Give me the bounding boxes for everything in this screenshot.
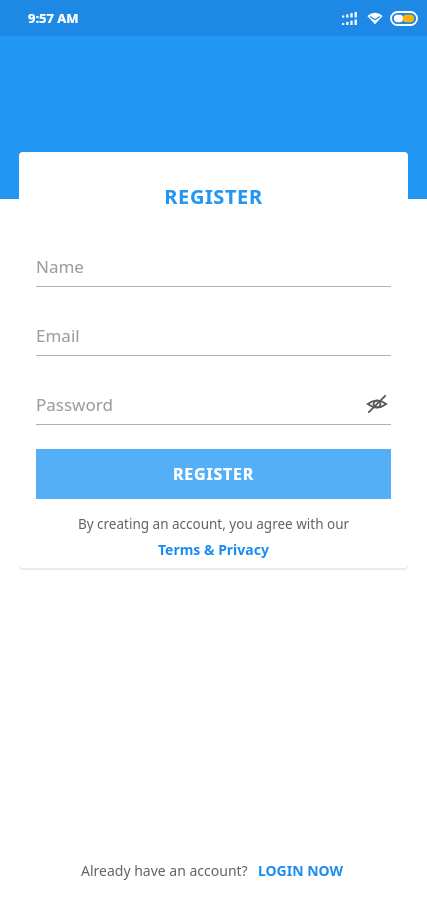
staticText: Password	[36, 393, 113, 416]
staticText: Terms & Privacy	[158, 540, 269, 559]
staticText: REGISTER	[36, 183, 391, 210]
staticText: By creating an account, you agree with o…	[36, 515, 391, 533]
button[interactable]: Name	[36, 251, 391, 281]
staticText: REGISTER	[173, 463, 255, 485]
staticText: Already have an account?	[81, 861, 248, 880]
button[interactable]: Terms & Privacy	[154, 538, 273, 561]
button[interactable]: Password	[36, 389, 391, 419]
button[interactable]: LOGIN NOW	[256, 857, 346, 884]
button[interactable]: Email	[36, 320, 391, 350]
button[interactable]: REGISTER	[36, 449, 391, 499]
staticText: 9:57 AM	[28, 9, 79, 27]
staticText: LOGIN NOW	[258, 861, 344, 880]
staticText: Name	[36, 255, 84, 278]
button[interactable]: Show password	[363, 390, 391, 418]
staticText: Email	[36, 324, 80, 347]
